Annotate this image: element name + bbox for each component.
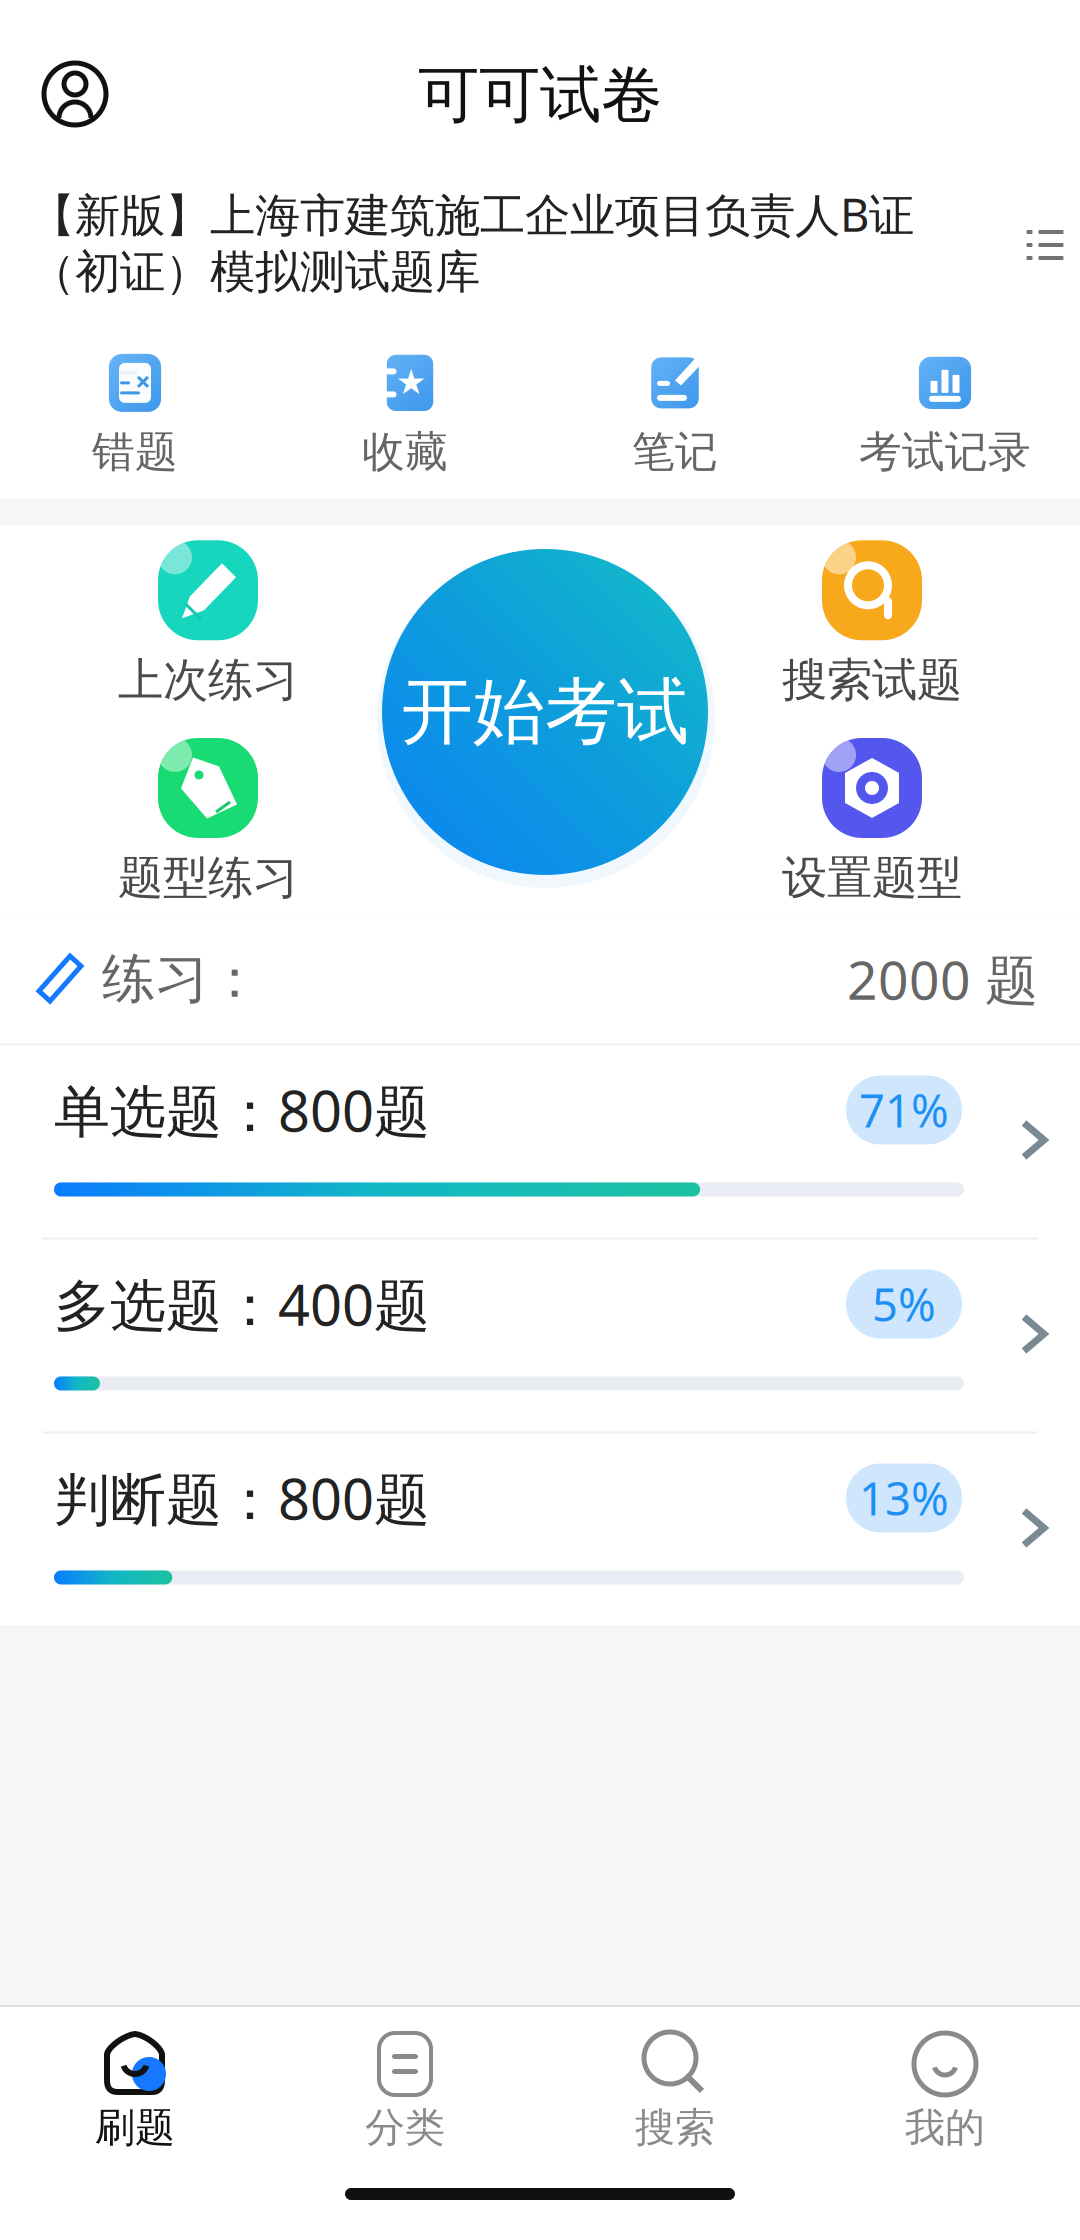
staticText: 错题 bbox=[92, 426, 178, 478]
button[interactable]: 多选题：400题 bbox=[12, 1239, 1068, 1431]
staticText: 分类 bbox=[365, 2103, 445, 2152]
staticText: 可可试卷 bbox=[418, 57, 662, 133]
staticText: 开始考试 bbox=[401, 668, 689, 756]
button[interactable]: 考试记录 bbox=[810, 350, 1080, 482]
staticText: 5% bbox=[872, 1274, 936, 1334]
staticText: 我的 bbox=[905, 2103, 985, 2152]
staticText: 收藏 bbox=[362, 426, 448, 478]
button[interactable]: 题型练习 bbox=[118, 738, 298, 906]
staticText: 题型练习 bbox=[118, 850, 298, 906]
staticText: 笔记 bbox=[632, 426, 718, 478]
button[interactable]: 搜索 bbox=[540, 2029, 810, 2152]
button[interactable]: 开始考试 bbox=[371, 554, 709, 892]
staticText: ★ bbox=[395, 362, 426, 401]
staticText: 71% bbox=[859, 1080, 949, 1140]
button[interactable]: 搜索试题 bbox=[782, 540, 962, 708]
staticText: 练习： bbox=[102, 946, 261, 1012]
staticText: 刷题 bbox=[95, 2103, 175, 2152]
staticText: 13% bbox=[859, 1468, 949, 1528]
button[interactable]: 分类 bbox=[270, 2029, 540, 2152]
staticText: 搜索 bbox=[635, 2103, 715, 2152]
staticText: 上次练习 bbox=[118, 652, 298, 708]
button[interactable]: 刷题 bbox=[0, 2029, 270, 2152]
button[interactable]: 错题 bbox=[0, 350, 270, 482]
staticText: 【新版】上海市建筑施工企业项目负责人B证（初证）模拟测试题库 bbox=[30, 184, 914, 300]
staticText: 2000 题 bbox=[847, 944, 1038, 1014]
staticText: 判断题：800题 bbox=[54, 1461, 430, 1535]
staticText: 多选题：400题 bbox=[54, 1267, 430, 1341]
button[interactable]: Profile bbox=[0, 43, 107, 107]
staticText: 设置题型 bbox=[782, 850, 962, 906]
staticText: 搜索试题 bbox=[782, 652, 962, 708]
staticText: 单选题：800题 bbox=[54, 1073, 430, 1147]
button[interactable]: 我的 bbox=[810, 2029, 1080, 2152]
button[interactable]: ★ bbox=[270, 350, 540, 482]
button[interactable]: 单选题：800题 bbox=[12, 1045, 1068, 1237]
button[interactable]: 上次练习 bbox=[118, 540, 298, 708]
button[interactable]: 笔记 bbox=[540, 350, 810, 482]
button[interactable]: 设置题型 bbox=[782, 738, 962, 906]
staticText: 考试记录 bbox=[859, 426, 1031, 478]
button[interactable]: 判断题：800题 bbox=[12, 1433, 1068, 1625]
